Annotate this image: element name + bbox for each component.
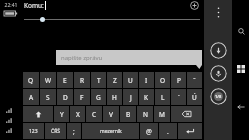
staticText: napište zprávu xyxy=(61,54,103,62)
button[interactable]: R xyxy=(74,72,90,88)
button[interactable]: Enter xyxy=(178,123,202,139)
staticText: . xyxy=(167,127,169,136)
button[interactable]: ´ xyxy=(171,89,186,105)
staticText: J xyxy=(130,93,132,102)
staticText: P xyxy=(177,76,181,85)
button[interactable]: D xyxy=(57,89,73,105)
button[interactable]: M xyxy=(154,106,170,122)
button[interactable]: E xyxy=(57,72,73,88)
button[interactable]: U xyxy=(123,72,138,88)
staticText: B xyxy=(126,110,131,119)
staticText: Komu: xyxy=(24,1,44,10)
staticText: K xyxy=(144,93,149,102)
button[interactable]: . xyxy=(159,123,177,139)
button[interactable]: Add recipient xyxy=(189,0,200,11)
staticText: C xyxy=(92,110,97,119)
button[interactable]: X xyxy=(70,106,85,122)
button[interactable]: Voice message xyxy=(210,65,227,82)
button[interactable]: T xyxy=(91,72,106,88)
staticText: mezerník xyxy=(100,128,122,135)
staticText: E xyxy=(63,76,67,85)
staticText: ; xyxy=(73,127,75,136)
staticText: M xyxy=(159,110,165,119)
button[interactable]: H xyxy=(107,89,122,105)
button[interactable]: Q xyxy=(23,72,39,88)
button[interactable]: 123 xyxy=(23,123,44,139)
staticText: ´ xyxy=(178,93,180,102)
button[interactable]: napište zprávu xyxy=(56,50,202,65)
button[interactable]: W xyxy=(40,72,56,88)
button[interactable]: @ xyxy=(140,123,158,139)
staticText: L xyxy=(161,93,165,102)
button[interactable]: Shift xyxy=(23,106,53,122)
staticText: ČŘŠ xyxy=(51,128,61,135)
button[interactable]: K xyxy=(139,89,154,105)
button[interactable]: Backspace xyxy=(171,106,202,122)
button[interactable]: A xyxy=(23,89,39,105)
staticText: G xyxy=(96,93,101,102)
staticText: U xyxy=(128,76,133,85)
button[interactable]: P xyxy=(171,72,186,88)
staticText: @ xyxy=(146,127,152,136)
button[interactable]: L xyxy=(155,89,170,105)
staticText: Q xyxy=(28,76,34,85)
button[interactable]: G xyxy=(91,89,106,105)
staticText: I xyxy=(145,76,148,85)
button[interactable]: More options xyxy=(210,4,226,20)
button[interactable]: B xyxy=(120,106,136,122)
staticText: F xyxy=(80,93,84,102)
button[interactable]: Start xyxy=(234,62,248,76)
button[interactable]: Send xyxy=(210,88,227,105)
staticText: Z xyxy=(113,76,117,85)
button[interactable]: Back xyxy=(234,100,248,114)
button[interactable]: Z xyxy=(107,72,122,88)
staticText: R xyxy=(80,76,85,85)
staticText: X xyxy=(76,110,80,119)
staticText: ˇ xyxy=(193,76,196,85)
button[interactable]: O xyxy=(155,72,170,88)
button[interactable]: N xyxy=(137,106,153,122)
staticText: O xyxy=(160,76,166,85)
staticText: A xyxy=(29,93,34,102)
button[interactable]: I xyxy=(139,72,154,88)
staticText: 1/8 xyxy=(215,94,222,99)
button[interactable]: ˇ xyxy=(187,72,202,88)
button[interactable]: Attach xyxy=(210,42,227,59)
button[interactable]: mezerník xyxy=(82,123,139,139)
staticText: D xyxy=(63,93,68,102)
button[interactable]: J xyxy=(123,89,138,105)
button[interactable]: S xyxy=(40,89,56,105)
staticText: 123 xyxy=(29,128,38,135)
staticText: S xyxy=(46,93,50,102)
button[interactable]: ; xyxy=(67,123,81,139)
button[interactable]: Y xyxy=(54,106,69,122)
staticText: W xyxy=(45,76,52,85)
staticText: T xyxy=(97,76,101,85)
button[interactable]: C xyxy=(86,106,102,122)
button[interactable]: ČŘŠ xyxy=(45,123,66,139)
button[interactable]: Search xyxy=(234,24,248,38)
staticText: V xyxy=(109,110,113,119)
button[interactable]: Ú xyxy=(187,89,202,105)
button[interactable]: F xyxy=(74,89,90,105)
staticText: Ú xyxy=(192,93,197,102)
staticText: Y xyxy=(60,110,64,119)
staticText: 22:41 xyxy=(0,2,22,9)
staticText: H xyxy=(112,93,117,102)
button[interactable]: V xyxy=(103,106,119,122)
staticText: N xyxy=(143,110,148,119)
